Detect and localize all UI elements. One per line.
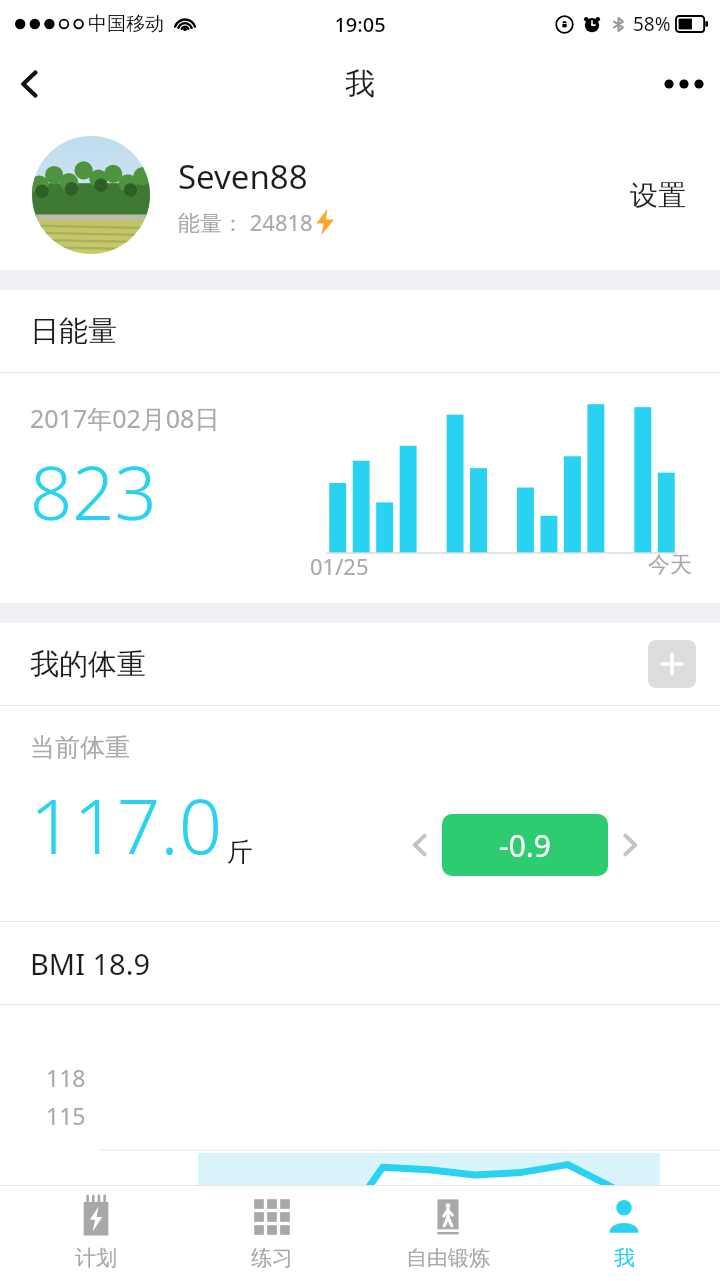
- button[interactable]: -0.9: [442, 814, 608, 876]
- staticText: 我: [614, 1245, 635, 1271]
- button[interactable]: 我: [544, 1185, 704, 1281]
- staticText: 斤: [227, 836, 253, 869]
- button[interactable]: Next: [608, 823, 652, 867]
- button[interactable]: 练习: [192, 1185, 352, 1281]
- staticText: -0.9: [499, 825, 552, 866]
- staticText: 自由锻炼: [406, 1245, 490, 1271]
- button[interactable]: 2017年02月08日: [0, 373, 720, 603]
- staticText: BMI 18.9: [30, 944, 151, 983]
- staticText: 练习: [251, 1245, 293, 1271]
- staticText: 当前体重: [30, 732, 130, 763]
- button[interactable]: 自由锻炼: [368, 1185, 528, 1281]
- button[interactable]: BMI 18.9: [0, 922, 720, 1004]
- staticText: 823: [30, 441, 157, 542]
- button[interactable]: Back: [0, 54, 60, 114]
- staticText: 我: [345, 65, 375, 103]
- staticText: 01/25: [310, 551, 369, 581]
- button[interactable]: More options: [648, 48, 720, 120]
- staticText: 计划: [75, 1245, 117, 1271]
- staticText: 今天: [648, 551, 692, 579]
- button[interactable]: 设置: [622, 168, 694, 223]
- staticText: 118: [46, 1062, 86, 1093]
- staticText: 19:05: [334, 11, 386, 38]
- staticText: 117.0: [30, 773, 223, 877]
- button[interactable]: Seven88: [0, 120, 720, 270]
- staticText: 我的体重: [30, 646, 146, 683]
- staticText: 2017年02月08日: [30, 401, 220, 435]
- staticText: 115: [46, 1100, 86, 1131]
- button[interactable]: 计划: [16, 1185, 176, 1281]
- staticText: Seven88: [178, 154, 308, 199]
- staticText: 能量： 24818: [178, 207, 313, 237]
- button[interactable]: 日能量: [0, 290, 720, 372]
- button[interactable]: Previous: [398, 823, 442, 867]
- button[interactable]: Add weight: [648, 640, 696, 688]
- staticText: 设置: [630, 178, 686, 213]
- staticText: 日能量: [30, 313, 117, 350]
- staticText: 58%: [633, 11, 671, 37]
- staticText: 中国移动: [88, 12, 164, 36]
